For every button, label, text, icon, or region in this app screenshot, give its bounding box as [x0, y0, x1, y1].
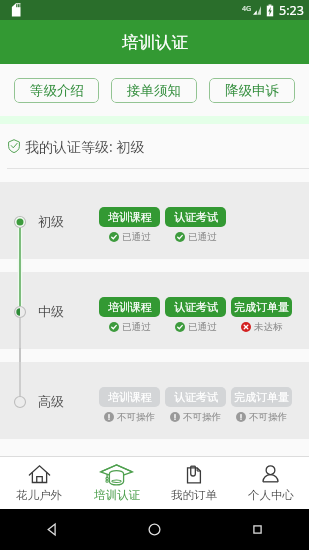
- staticText: 不可操作: [249, 411, 287, 423]
- button[interactable]: 我的订单: [155, 457, 232, 509]
- staticText: 高级: [38, 393, 64, 409]
- button[interactable]: 我的认证等级: 初级: [8, 124, 309, 168]
- button[interactable]: 认证考试: [165, 387, 226, 407]
- button[interactable]: 培训课程: [99, 387, 160, 407]
- staticText: 个人中心: [248, 488, 294, 502]
- other: Home: [147, 522, 162, 537]
- button[interactable]: 完成订单量: [231, 297, 292, 317]
- button[interactable]: 培训课程: [99, 297, 160, 317]
- other: Recents: [250, 522, 265, 537]
- staticText: 我的认证等级: 初级: [25, 137, 145, 156]
- staticText: 不可操作: [183, 411, 221, 423]
- staticText: 花儿户外: [16, 488, 62, 502]
- staticText: 培训认证: [122, 32, 188, 53]
- button[interactable]: 完成订单量: [231, 387, 292, 407]
- other: Back: [44, 522, 59, 537]
- staticText: 不可操作: [117, 411, 155, 423]
- button[interactable]: 个人中心: [232, 457, 309, 509]
- staticText: 中级: [38, 303, 64, 319]
- button[interactable]: 等级介绍: [14, 78, 99, 103]
- staticText: 已通过: [188, 231, 217, 243]
- button[interactable]: 培训课程: [99, 207, 160, 227]
- staticText: 培训课程: [108, 300, 152, 314]
- staticText: 认证考试: [174, 390, 218, 404]
- staticText: 5:23: [279, 2, 304, 19]
- staticText: 已通过: [122, 321, 151, 333]
- staticText: 已通过: [188, 321, 217, 333]
- staticText: 认证考试: [174, 210, 218, 224]
- staticText: 我的订单: [171, 488, 217, 502]
- button[interactable]: Recents: [206, 509, 309, 550]
- button[interactable]: 培训认证: [78, 457, 155, 509]
- button[interactable]: 认证考试: [165, 207, 226, 227]
- staticText: 接单须知: [127, 82, 181, 99]
- button[interactable]: Home: [103, 509, 206, 550]
- staticText: 认证考试: [174, 300, 218, 314]
- staticText: 未达标: [254, 321, 283, 333]
- button[interactable]: 接单须知: [111, 78, 197, 103]
- staticText: 降级申诉: [225, 82, 279, 99]
- staticText: 初级: [38, 213, 64, 229]
- staticText: 培训课程: [108, 210, 152, 224]
- staticText: 培训认证: [94, 488, 140, 502]
- button[interactable]: 花儿户外: [0, 457, 78, 509]
- staticText: 完成订单量: [234, 300, 289, 314]
- staticText: 完成订单量: [234, 390, 289, 404]
- staticText: 培训课程: [108, 390, 152, 404]
- button[interactable]: Back: [0, 509, 103, 550]
- staticText: 已通过: [122, 231, 151, 243]
- button[interactable]: 认证考试: [165, 297, 226, 317]
- staticText: 4G: [242, 4, 252, 14]
- staticText: 等级介绍: [30, 82, 84, 99]
- button[interactable]: 降级申诉: [209, 78, 295, 103]
